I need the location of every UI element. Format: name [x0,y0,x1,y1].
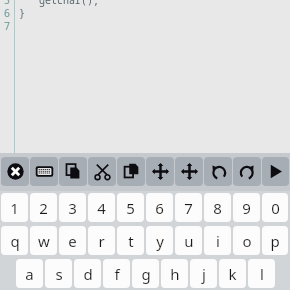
staticText: 5 [126,198,135,218]
button[interactable]: Undo [204,157,232,186]
button[interactable]: Move cursor [175,157,203,186]
staticText: 7 [184,198,193,218]
button[interactable]: Move [146,157,174,186]
staticText: w [38,231,50,251]
button[interactable]: w [30,226,57,255]
button[interactable]: h [161,259,188,288]
button[interactable]: o [233,226,260,255]
button[interactable]: 3 [59,193,86,222]
staticText: a [25,264,34,284]
button[interactable]: Copy [59,157,87,186]
button[interactable]: 4 [88,193,115,222]
button[interactable]: k [219,259,246,288]
button[interactable]: 9 [233,193,260,222]
button[interactable]: 7 [175,193,202,222]
button[interactable]: 6 [146,193,173,222]
staticText: q [10,231,20,251]
staticText: } [19,6,25,20]
staticText: 8 [213,198,222,218]
button[interactable]: s [45,259,72,288]
button[interactable]: Cut [88,157,116,186]
staticText: 9 [242,198,251,218]
button[interactable]: y [146,226,173,255]
staticText: r [98,231,105,251]
button[interactable]: j [190,259,217,288]
staticText: 3 [68,198,77,218]
button[interactable]: 8 [204,193,231,222]
staticText: 4 [97,198,106,218]
staticText: 1 [10,198,19,218]
staticText: 0 [271,198,280,218]
staticText: t [128,231,134,251]
staticText: 7 [4,19,10,33]
staticText: g [141,264,151,284]
button[interactable]: i [204,226,231,255]
button[interactable]: a [16,259,43,288]
staticText: getchar(); [39,0,99,7]
button[interactable]: q [1,226,28,255]
staticText: s [55,264,63,284]
button[interactable]: r [88,226,115,255]
staticText: d [83,264,93,284]
staticText: l [260,264,264,284]
staticText: 6 [4,6,10,20]
button[interactable]: Close [1,157,29,186]
staticText: h [170,264,180,284]
button[interactable]: Run [262,157,289,186]
button[interactable]: 5 [117,193,144,222]
button[interactable]: Keyboard [30,157,58,186]
button[interactable]: 2 [30,193,57,222]
button[interactable]: Redo [233,157,261,186]
button[interactable]: g [132,259,159,288]
staticText: k [228,264,237,284]
staticText: e [68,231,77,251]
button[interactable]: 0 [262,193,288,222]
staticText: i [216,231,220,251]
button[interactable]: f [103,259,130,288]
staticText: o [242,231,252,251]
button[interactable]: u [175,226,202,255]
staticText: y [156,231,164,251]
button[interactable]: d [74,259,101,288]
button[interactable]: l [248,259,275,288]
staticText: p [270,231,280,251]
button[interactable]: e [59,226,86,255]
staticText: f [114,264,120,284]
staticText: j [202,264,206,284]
button[interactable]: Paste [117,157,145,186]
button[interactable]: p [262,226,288,255]
staticText: u [184,231,194,251]
button[interactable]: 1 [1,193,28,222]
staticText: 2 [39,198,48,218]
staticText: 6 [155,198,164,218]
button[interactable]: t [117,226,144,255]
staticText: 5 [4,0,10,7]
